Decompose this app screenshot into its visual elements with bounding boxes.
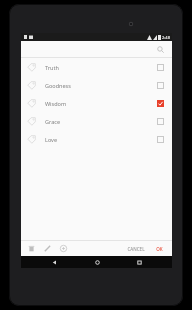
button[interactable]: Edit: [42, 243, 53, 254]
staticText: OK: [156, 246, 163, 252]
button[interactable]: CANCEL: [123, 244, 149, 254]
button[interactable]: Recent apps: [129, 256, 149, 268]
staticText: Wisdom: [45, 100, 154, 107]
button[interactable]: Goodness: [21, 76, 172, 94]
staticText: Love: [45, 136, 154, 143]
staticText: Grace: [45, 118, 154, 125]
button[interactable]: OK: [152, 244, 167, 254]
button[interactable]: Add: [58, 243, 69, 254]
staticText: Truth: [45, 64, 154, 71]
button[interactable]: Search: [154, 43, 167, 56]
button[interactable]: Truth: [21, 58, 172, 76]
button[interactable]: Back: [44, 256, 64, 268]
button[interactable]: Home: [87, 256, 107, 268]
staticText: CANCEL: [127, 246, 145, 252]
staticText: Goodness: [45, 82, 154, 89]
button[interactable]: Love: [21, 130, 172, 148]
button[interactable]: Grace: [21, 112, 172, 130]
staticText: 2:48: [162, 35, 170, 40]
button[interactable]: Delete: [26, 243, 37, 254]
button[interactable]: Wisdom: [21, 94, 172, 112]
